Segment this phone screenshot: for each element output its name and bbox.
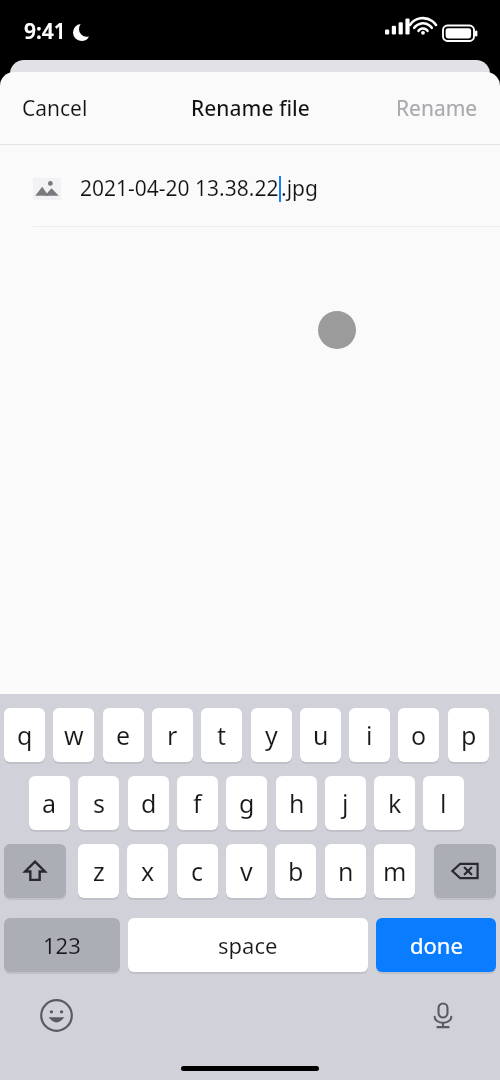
button[interactable]: Backspace <box>434 844 496 898</box>
staticText: Cancel <box>22 94 88 123</box>
button[interactable]: w <box>53 708 94 762</box>
button[interactable]: z <box>78 844 119 898</box>
button[interactable]: k <box>374 776 415 830</box>
button[interactable]: o <box>398 708 439 762</box>
button[interactable]: Emoji <box>33 992 79 1038</box>
button[interactable]: space <box>128 918 368 972</box>
button[interactable]: n <box>325 844 366 898</box>
staticText: 123 <box>43 930 81 960</box>
button[interactable]: p <box>448 708 489 762</box>
staticText: u <box>313 718 329 752</box>
staticText: g <box>239 786 255 820</box>
staticText: s <box>93 786 105 820</box>
staticText: 2021-04-20 13.38.22 <box>80 174 279 203</box>
button[interactable]: l <box>423 776 464 830</box>
button[interactable]: Cancel <box>8 84 102 133</box>
staticText: z <box>93 854 105 888</box>
button[interactable]: r <box>152 708 193 762</box>
button[interactable]: Rename <box>382 84 492 133</box>
staticText: 9:41 <box>24 17 66 46</box>
button[interactable]: y <box>251 708 292 762</box>
button[interactable]: 2021-04-20 13.38.22 <box>0 150 500 227</box>
staticText: f <box>193 786 202 820</box>
staticText: x <box>141 854 155 888</box>
staticText: .jpg <box>281 174 318 203</box>
staticText: space <box>218 930 278 960</box>
staticText: Rename <box>396 94 478 123</box>
button[interactable]: c <box>177 844 218 898</box>
staticText: t <box>217 718 227 752</box>
staticText: d <box>141 786 157 820</box>
button[interactable]: g <box>226 776 267 830</box>
button[interactable]: Dictate <box>420 992 466 1038</box>
staticText: i <box>366 718 373 752</box>
staticText: a <box>42 786 57 820</box>
staticText: m <box>383 854 407 888</box>
button[interactable]: j <box>325 776 366 830</box>
staticText: q <box>17 718 33 752</box>
button[interactable]: s <box>78 776 119 830</box>
staticText: k <box>388 786 402 820</box>
button[interactable]: done <box>376 918 496 972</box>
staticText: c <box>191 854 204 888</box>
staticText: v <box>240 854 253 888</box>
button[interactable]: f <box>177 776 218 830</box>
staticText: Rename file <box>191 94 310 123</box>
button[interactable]: t <box>201 708 242 762</box>
button[interactable]: i <box>349 708 390 762</box>
staticText: n <box>338 854 354 888</box>
staticText: o <box>411 718 427 752</box>
button[interactable]: a <box>29 776 70 830</box>
button[interactable]: q <box>4 708 45 762</box>
staticText: done <box>410 930 463 960</box>
button[interactable]: d <box>128 776 169 830</box>
staticText: w <box>64 718 84 752</box>
button[interactable]: Shift <box>4 844 66 898</box>
button[interactable]: x <box>127 844 168 898</box>
button[interactable]: u <box>300 708 341 762</box>
button[interactable]: b <box>275 844 316 898</box>
button[interactable]: m <box>374 844 415 898</box>
button[interactable]: e <box>103 708 144 762</box>
button[interactable]: v <box>226 844 267 898</box>
staticText: r <box>167 718 178 752</box>
staticText: h <box>289 786 305 820</box>
staticText: y <box>265 718 278 752</box>
button[interactable]: h <box>276 776 317 830</box>
staticText: b <box>288 854 304 888</box>
staticText: p <box>461 718 477 752</box>
button[interactable]: 123 <box>4 918 120 972</box>
staticText: j <box>342 786 349 820</box>
staticText: e <box>116 718 131 752</box>
staticText: l <box>440 786 447 820</box>
